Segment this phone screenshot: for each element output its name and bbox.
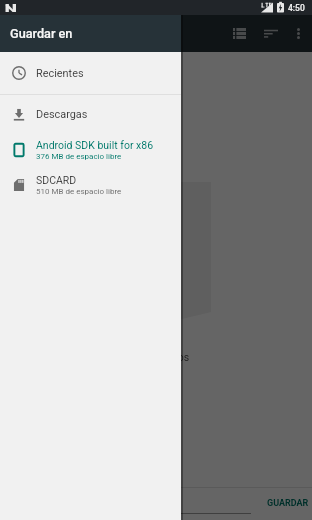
staticText: Guardar en (10, 26, 73, 41)
button[interactable]: Android SDK built for x86 (0, 133, 181, 166)
button[interactable]: SDCARD (0, 166, 181, 203)
staticText: Sin elementos (123, 351, 190, 363)
button[interactable]: Descargas (0, 95, 181, 133)
staticText: Recientes (36, 67, 84, 80)
staticText: Descargas (36, 108, 88, 121)
button[interactable]: Sort (256, 15, 286, 52)
button[interactable]: List view (224, 15, 255, 52)
staticText: Android SDK built for x86 (36, 139, 154, 151)
staticText: SDCARD (36, 174, 77, 186)
button[interactable]: More options (287, 15, 309, 52)
staticText: 510 MB de espacio libre (36, 187, 122, 196)
staticText: GUARDAR (267, 498, 309, 509)
staticText: 4:50 (288, 3, 305, 13)
staticText: 376 MB de espacio libre (36, 152, 122, 161)
button[interactable]: GUARDAR (262, 494, 312, 513)
button[interactable]: Recientes (0, 52, 181, 94)
